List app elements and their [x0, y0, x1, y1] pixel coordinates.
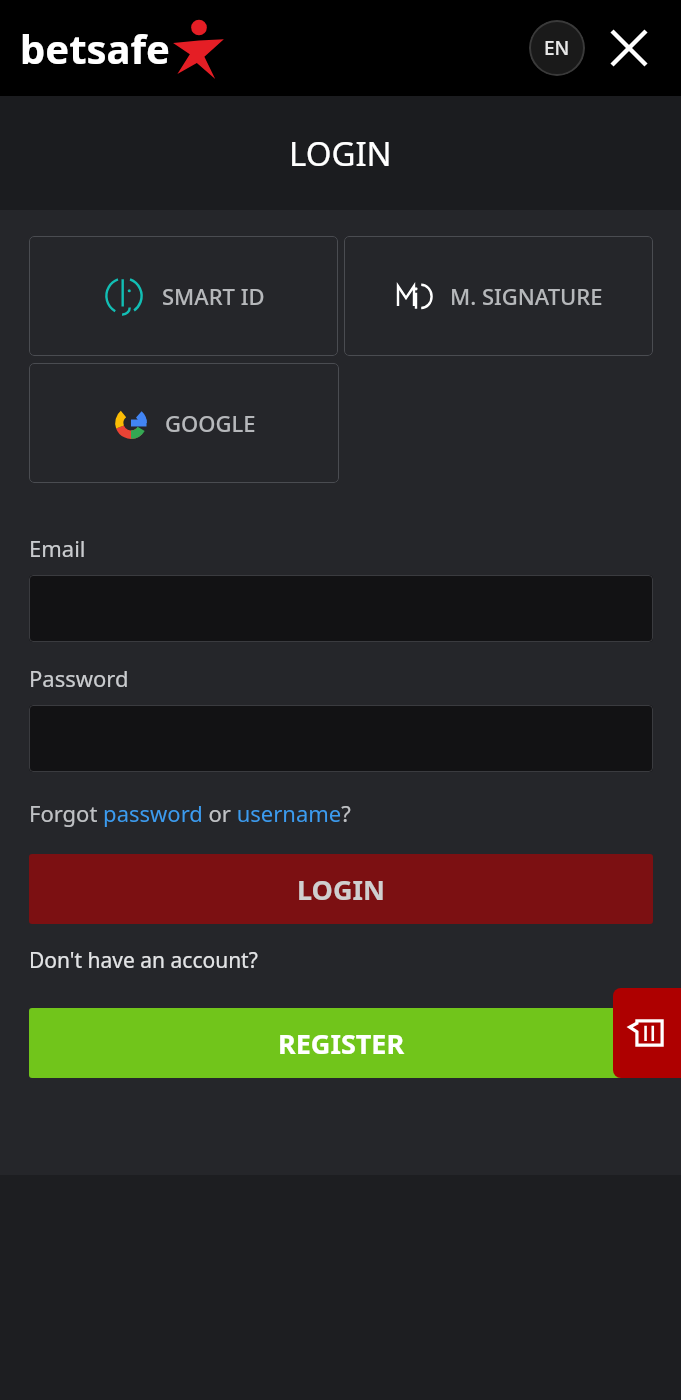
button[interactable]: Close [603, 22, 655, 74]
staticText: Email [29, 533, 86, 563]
staticText: EN [544, 35, 570, 61]
button[interactable]: GOOGLE [29, 363, 339, 483]
staticText: Forgot password or username? [29, 798, 351, 828]
staticText: REGISTER [278, 1025, 405, 1062]
staticText: LOGIN [289, 131, 392, 176]
staticText: SMART ID [162, 281, 265, 311]
staticText: M. SIGNATURE [450, 281, 603, 311]
button[interactable]: M. SIGNATURE [344, 236, 653, 356]
button[interactable] [29, 575, 653, 642]
button[interactable]: EN [529, 20, 585, 76]
button[interactable] [29, 705, 653, 772]
staticText: betsafe [20, 21, 170, 75]
button[interactable]: Live chat support [613, 988, 681, 1078]
button[interactable]: LOGIN [29, 854, 653, 924]
staticText: Don't have an account? [29, 946, 258, 975]
staticText: Password [29, 663, 129, 693]
button[interactable]: SMART ID [29, 236, 338, 356]
staticText: GOOGLE [165, 408, 256, 438]
button[interactable]: REGISTER [29, 1008, 653, 1078]
button[interactable]: Forgot password or username? [29, 798, 351, 828]
staticText: LOGIN [297, 871, 385, 908]
